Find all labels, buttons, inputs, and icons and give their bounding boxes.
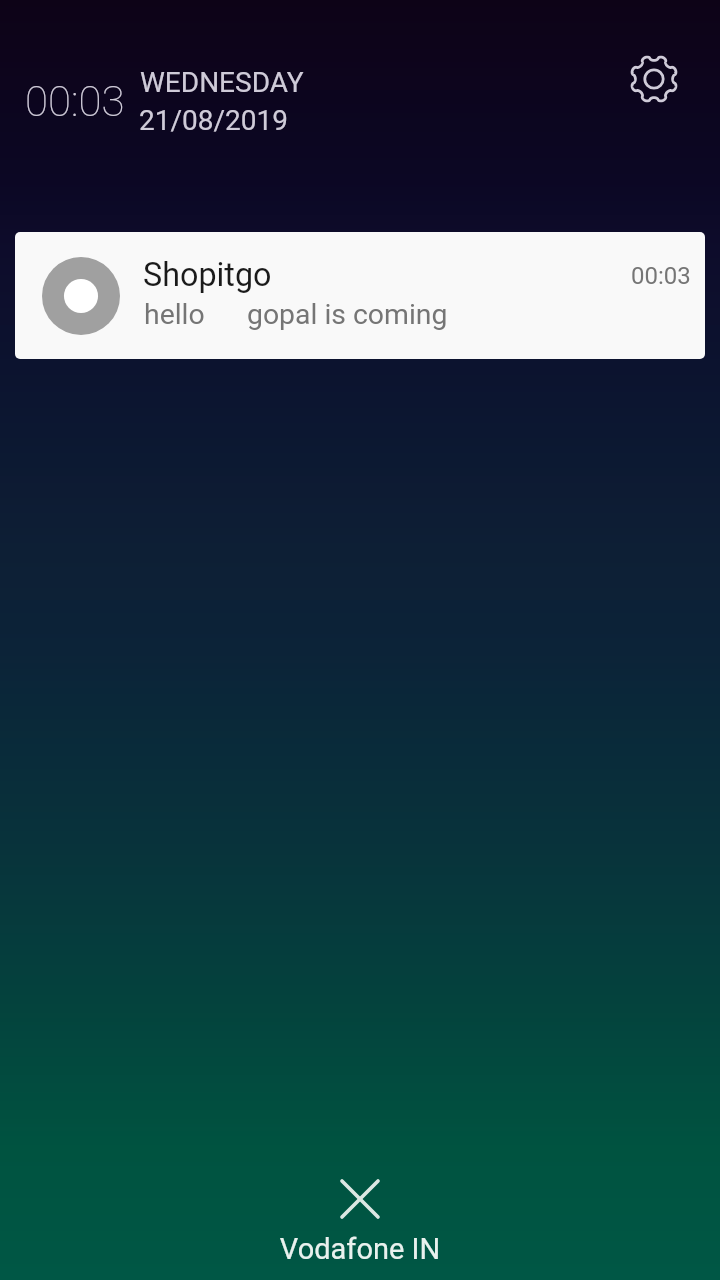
button[interactable]: Shopitgo: [15, 232, 705, 359]
staticText: Shopitgo: [143, 256, 272, 294]
staticText: 21/08/2019: [139, 104, 288, 137]
staticText: Vodafone IN: [0, 1232, 720, 1266]
button[interactable]: Dismiss all notifications: [328, 1167, 392, 1231]
button[interactable]: Settings: [620, 45, 688, 113]
staticText: 00:03: [631, 262, 691, 290]
staticText: 00:03: [25, 77, 125, 126]
staticText: WEDNESDAY: [140, 66, 304, 99]
staticText: hello gopal is coming: [144, 298, 448, 331]
